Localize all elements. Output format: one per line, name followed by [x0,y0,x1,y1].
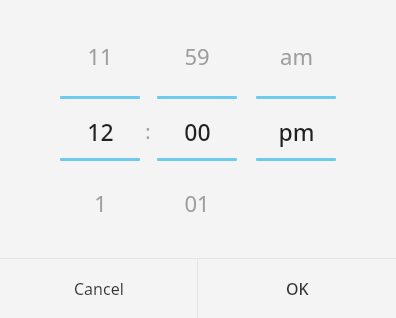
staticText: 59 [184,41,210,71]
staticText: OK [286,278,309,300]
button[interactable]: Minute [137,20,257,235]
staticText: 1 [94,188,107,218]
staticText: 01 [184,188,210,218]
staticText: Cancel [74,278,124,300]
staticText: am [280,41,313,71]
staticText: pm [278,116,315,147]
staticText: : [145,118,151,145]
button[interactable]: AM or PM [236,20,356,235]
button[interactable]: OK [198,259,396,318]
staticText: 11 [87,41,113,71]
button[interactable]: Hour [40,20,160,235]
staticText: 00 [184,116,211,147]
staticText: 12 [87,116,114,147]
button[interactable]: Cancel [0,259,197,318]
